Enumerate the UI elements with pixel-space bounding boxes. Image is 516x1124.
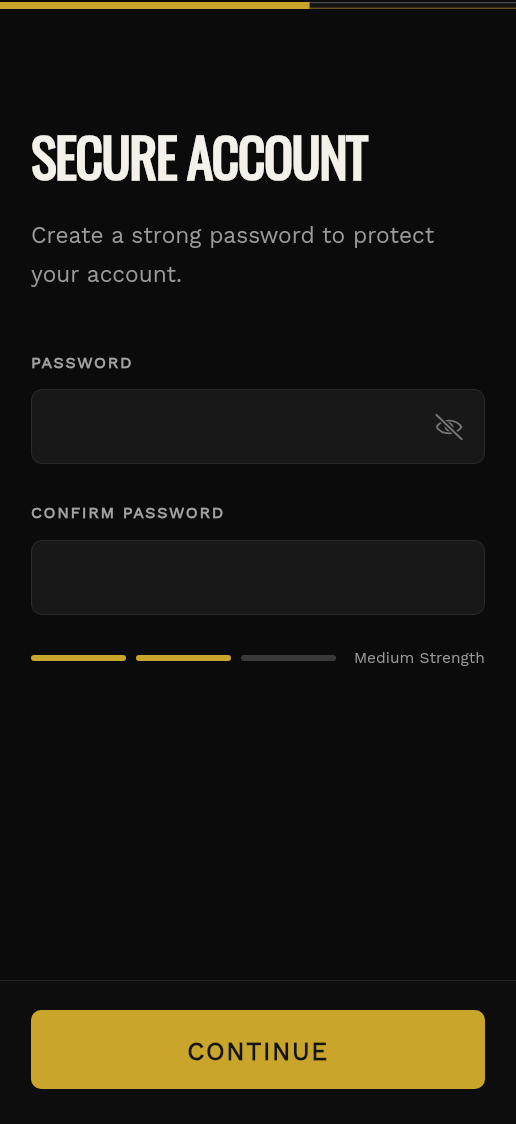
button[interactable]	[31, 540, 485, 615]
staticText: PASSWORD	[31, 353, 134, 372]
staticText: CONTINUE	[187, 1037, 329, 1066]
staticText: SECURE ACCOUNT	[31, 116, 367, 196]
button[interactable]: Show password	[429, 407, 469, 447]
staticText: Create a strong password to protect your…	[31, 222, 485, 287]
button[interactable]: CONTINUE	[31, 1010, 485, 1089]
staticText: CONFIRM PASSWORD	[31, 503, 225, 522]
button[interactable]: Show password	[31, 389, 485, 464]
staticText: Medium Strength	[354, 649, 485, 667]
